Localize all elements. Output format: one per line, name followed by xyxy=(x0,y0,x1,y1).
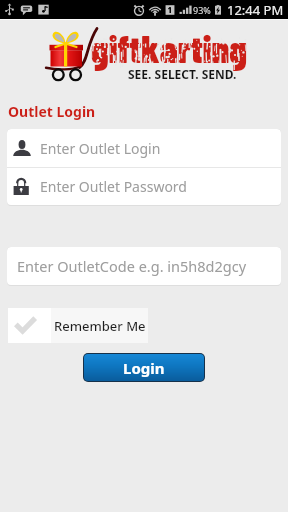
button[interactable]: Login xyxy=(84,354,204,381)
staticText: Remember Me xyxy=(54,317,146,335)
button[interactable]: Remember Me checkbox xyxy=(8,308,51,343)
staticText: Outlet Login xyxy=(8,102,96,121)
staticText: Login xyxy=(123,358,165,378)
staticText: Enter Outlet Password xyxy=(40,177,187,196)
button[interactable]: Enter Outlet Password xyxy=(7,168,281,205)
staticText: giftkarting xyxy=(91,24,247,70)
button[interactable]: Enter OutletCode e.g. in5h8d2gcy xyxy=(7,247,281,285)
staticText: 93% xyxy=(193,4,211,16)
button[interactable]: Enter Outlet Login xyxy=(7,129,281,167)
staticText: 12:44 PM xyxy=(227,1,284,19)
staticText: Enter Outlet Login xyxy=(40,139,161,158)
button[interactable]: Remember Me xyxy=(51,308,148,343)
staticText: SEE. SELECT. SEND. xyxy=(128,66,237,82)
staticText: Enter OutletCode e.g. in5h8d2gcy xyxy=(17,256,247,276)
